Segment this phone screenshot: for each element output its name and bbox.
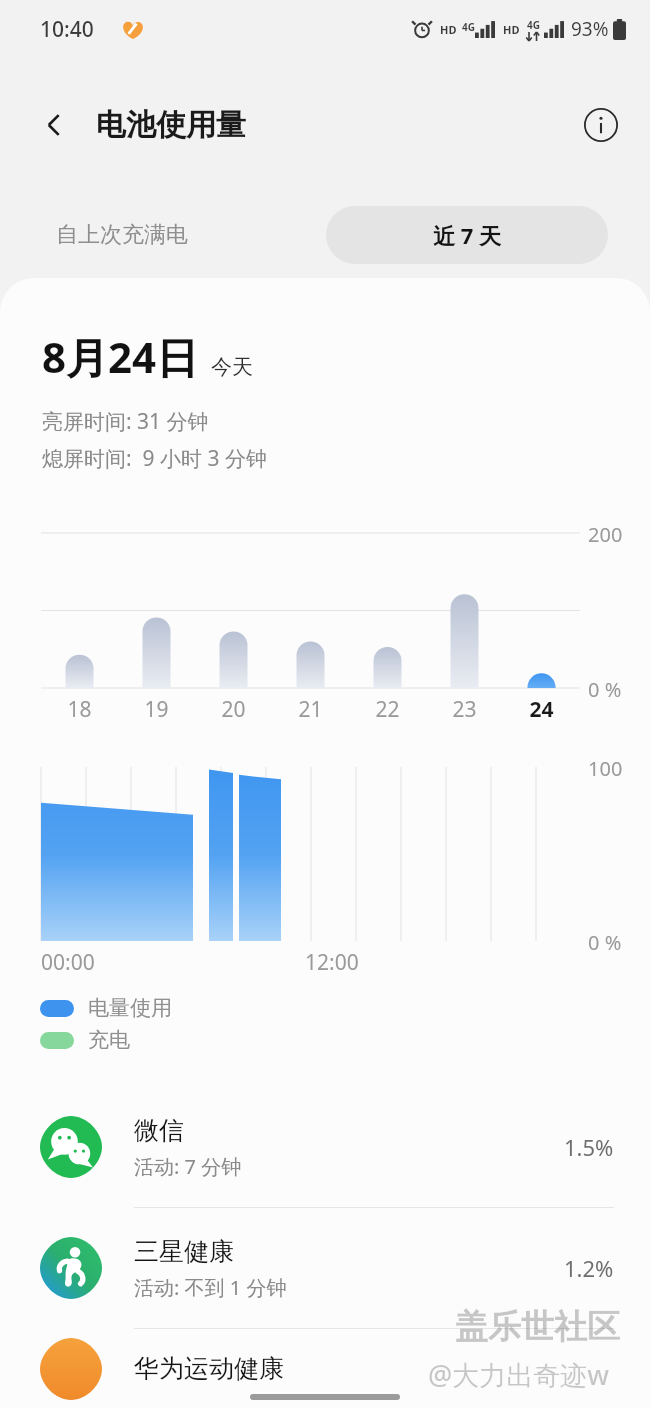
staticText: 19 <box>144 695 169 724</box>
staticText: 93% <box>571 16 609 42</box>
staticText: 电池使用量 <box>96 106 246 144</box>
staticText: 22 <box>375 695 400 724</box>
staticText: 亮屏时间: 31 分钟 <box>42 407 209 436</box>
staticText: 18 <box>67 695 92 724</box>
staticText: 活动: 7 分钟 <box>134 1153 242 1180</box>
button[interactable]: 三星健康 <box>0 1208 650 1328</box>
button[interactable]: 华为运动健康 <box>0 1329 650 1408</box>
button[interactable]: 自上次充满电 <box>42 206 202 264</box>
staticText: 8月24日 <box>42 328 199 385</box>
staticText: 4G <box>527 18 540 32</box>
staticText: 200 <box>588 521 623 548</box>
staticText: 21 <box>298 695 323 724</box>
staticText: 20 <box>221 695 246 724</box>
staticText: 12:00 <box>305 948 359 977</box>
staticText: 自上次充满电 <box>56 221 188 249</box>
staticText: 4G <box>462 20 475 34</box>
staticText: 微信 <box>134 1115 184 1146</box>
staticText: 10:40 <box>40 15 94 44</box>
staticText: 100 <box>588 755 623 782</box>
staticText: 23 <box>452 695 477 724</box>
staticText: 三星健康 <box>134 1236 234 1267</box>
staticText: 24 <box>529 695 554 724</box>
staticText: 1.2% <box>564 1253 614 1283</box>
staticText: 华为运动健康 <box>134 1353 284 1384</box>
staticText: 0 % <box>588 929 622 956</box>
staticText: HD <box>440 22 457 37</box>
button[interactable]: Back <box>28 99 80 151</box>
button[interactable]: Information <box>574 98 628 152</box>
staticText: 熄屏时间: 9 小时 3 分钟 <box>42 444 267 473</box>
staticText: 今天 <box>211 354 253 380</box>
staticText: @大力出奇迹w <box>428 1356 610 1393</box>
staticText: 充电 <box>88 1027 130 1053</box>
button[interactable]: 微信 <box>0 1087 650 1207</box>
staticText: 0 % <box>588 676 622 703</box>
staticText: 00:00 <box>41 948 95 977</box>
staticText: 活动: 不到 1 分钟 <box>134 1274 287 1301</box>
staticText: HD <box>503 22 520 37</box>
staticText: 1.5% <box>564 1132 614 1162</box>
staticText: 盖乐世社区 <box>455 1306 620 1348</box>
staticText: 近 7 天 <box>433 220 502 250</box>
button[interactable]: 近 7 天 <box>326 206 608 264</box>
staticText: 电量使用 <box>88 995 172 1021</box>
